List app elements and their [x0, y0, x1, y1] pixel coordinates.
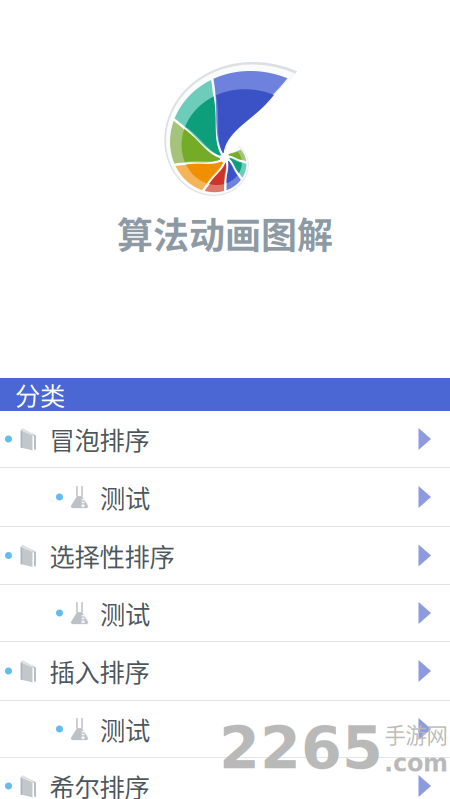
button[interactable]: 插入排序	[0, 642, 450, 700]
button[interactable]: 冒泡排序	[0, 411, 450, 467]
staticText: 测试	[100, 479, 150, 515]
staticText: 选择性排序	[49, 537, 174, 574]
button[interactable]: 选择性排序	[0, 527, 450, 584]
button[interactable]: 希尔排序	[0, 758, 450, 799]
button[interactable]: 测试	[0, 585, 450, 641]
staticText: 测试	[100, 711, 150, 747]
button[interactable]: 测试	[0, 468, 450, 526]
staticText: 测试	[100, 595, 150, 631]
staticText: 算法动画图解	[117, 207, 333, 259]
button[interactable]: 测试	[0, 701, 450, 757]
staticText: 希尔排序	[49, 768, 149, 799]
staticText: 2265	[219, 714, 383, 782]
staticText: 冒泡排序	[49, 421, 149, 457]
staticText: .com	[384, 749, 448, 777]
staticText: 分类	[15, 376, 65, 413]
staticText: 手游网	[384, 718, 447, 749]
staticText: 插入排序	[49, 653, 149, 689]
